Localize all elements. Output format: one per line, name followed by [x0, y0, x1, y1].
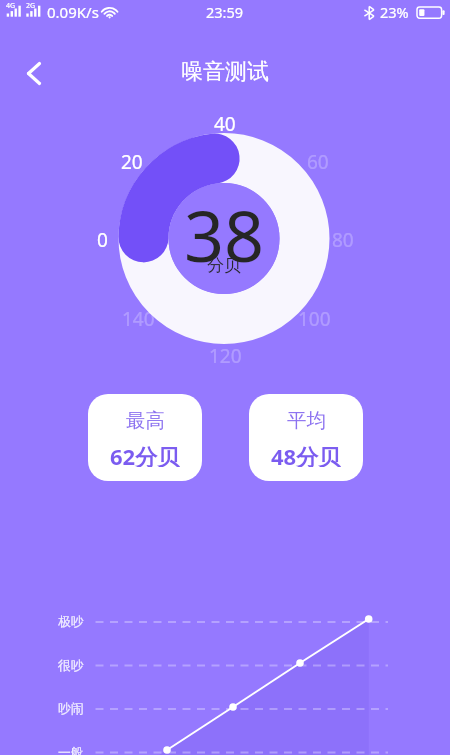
- staticText: 140: [122, 306, 155, 332]
- staticText: 80: [332, 227, 354, 253]
- staticText: 23:59: [206, 2, 244, 18]
- staticText: 40: [214, 111, 236, 137]
- staticText: 吵闹: [58, 701, 84, 717]
- button[interactable]: 平均: [249, 394, 363, 481]
- staticText: 分贝: [207, 255, 241, 276]
- staticText: 0: [97, 227, 108, 253]
- staticText: 23%: [380, 2, 409, 18]
- staticText: 平均: [287, 408, 326, 432]
- staticText: 48分贝: [271, 441, 341, 467]
- staticText: 38: [184, 187, 265, 267]
- staticText: 120: [209, 343, 242, 369]
- staticText: 0.09K/s: [47, 2, 99, 18]
- staticText: 62分贝: [110, 441, 180, 467]
- staticText: 最高: [126, 408, 165, 432]
- staticText: 100: [298, 306, 331, 332]
- staticText: 噪音测试: [181, 58, 269, 86]
- staticText: 2G: [26, 1, 36, 11]
- button[interactable]: Back: [8, 47, 60, 99]
- staticText: 60: [307, 149, 329, 175]
- staticText: 极吵: [58, 614, 84, 630]
- button[interactable]: 最高: [88, 394, 202, 481]
- staticText: 很吵: [58, 658, 84, 674]
- staticText: 20: [121, 149, 143, 175]
- staticText: 一般: [58, 745, 84, 755]
- staticText: 4G: [6, 1, 16, 11]
